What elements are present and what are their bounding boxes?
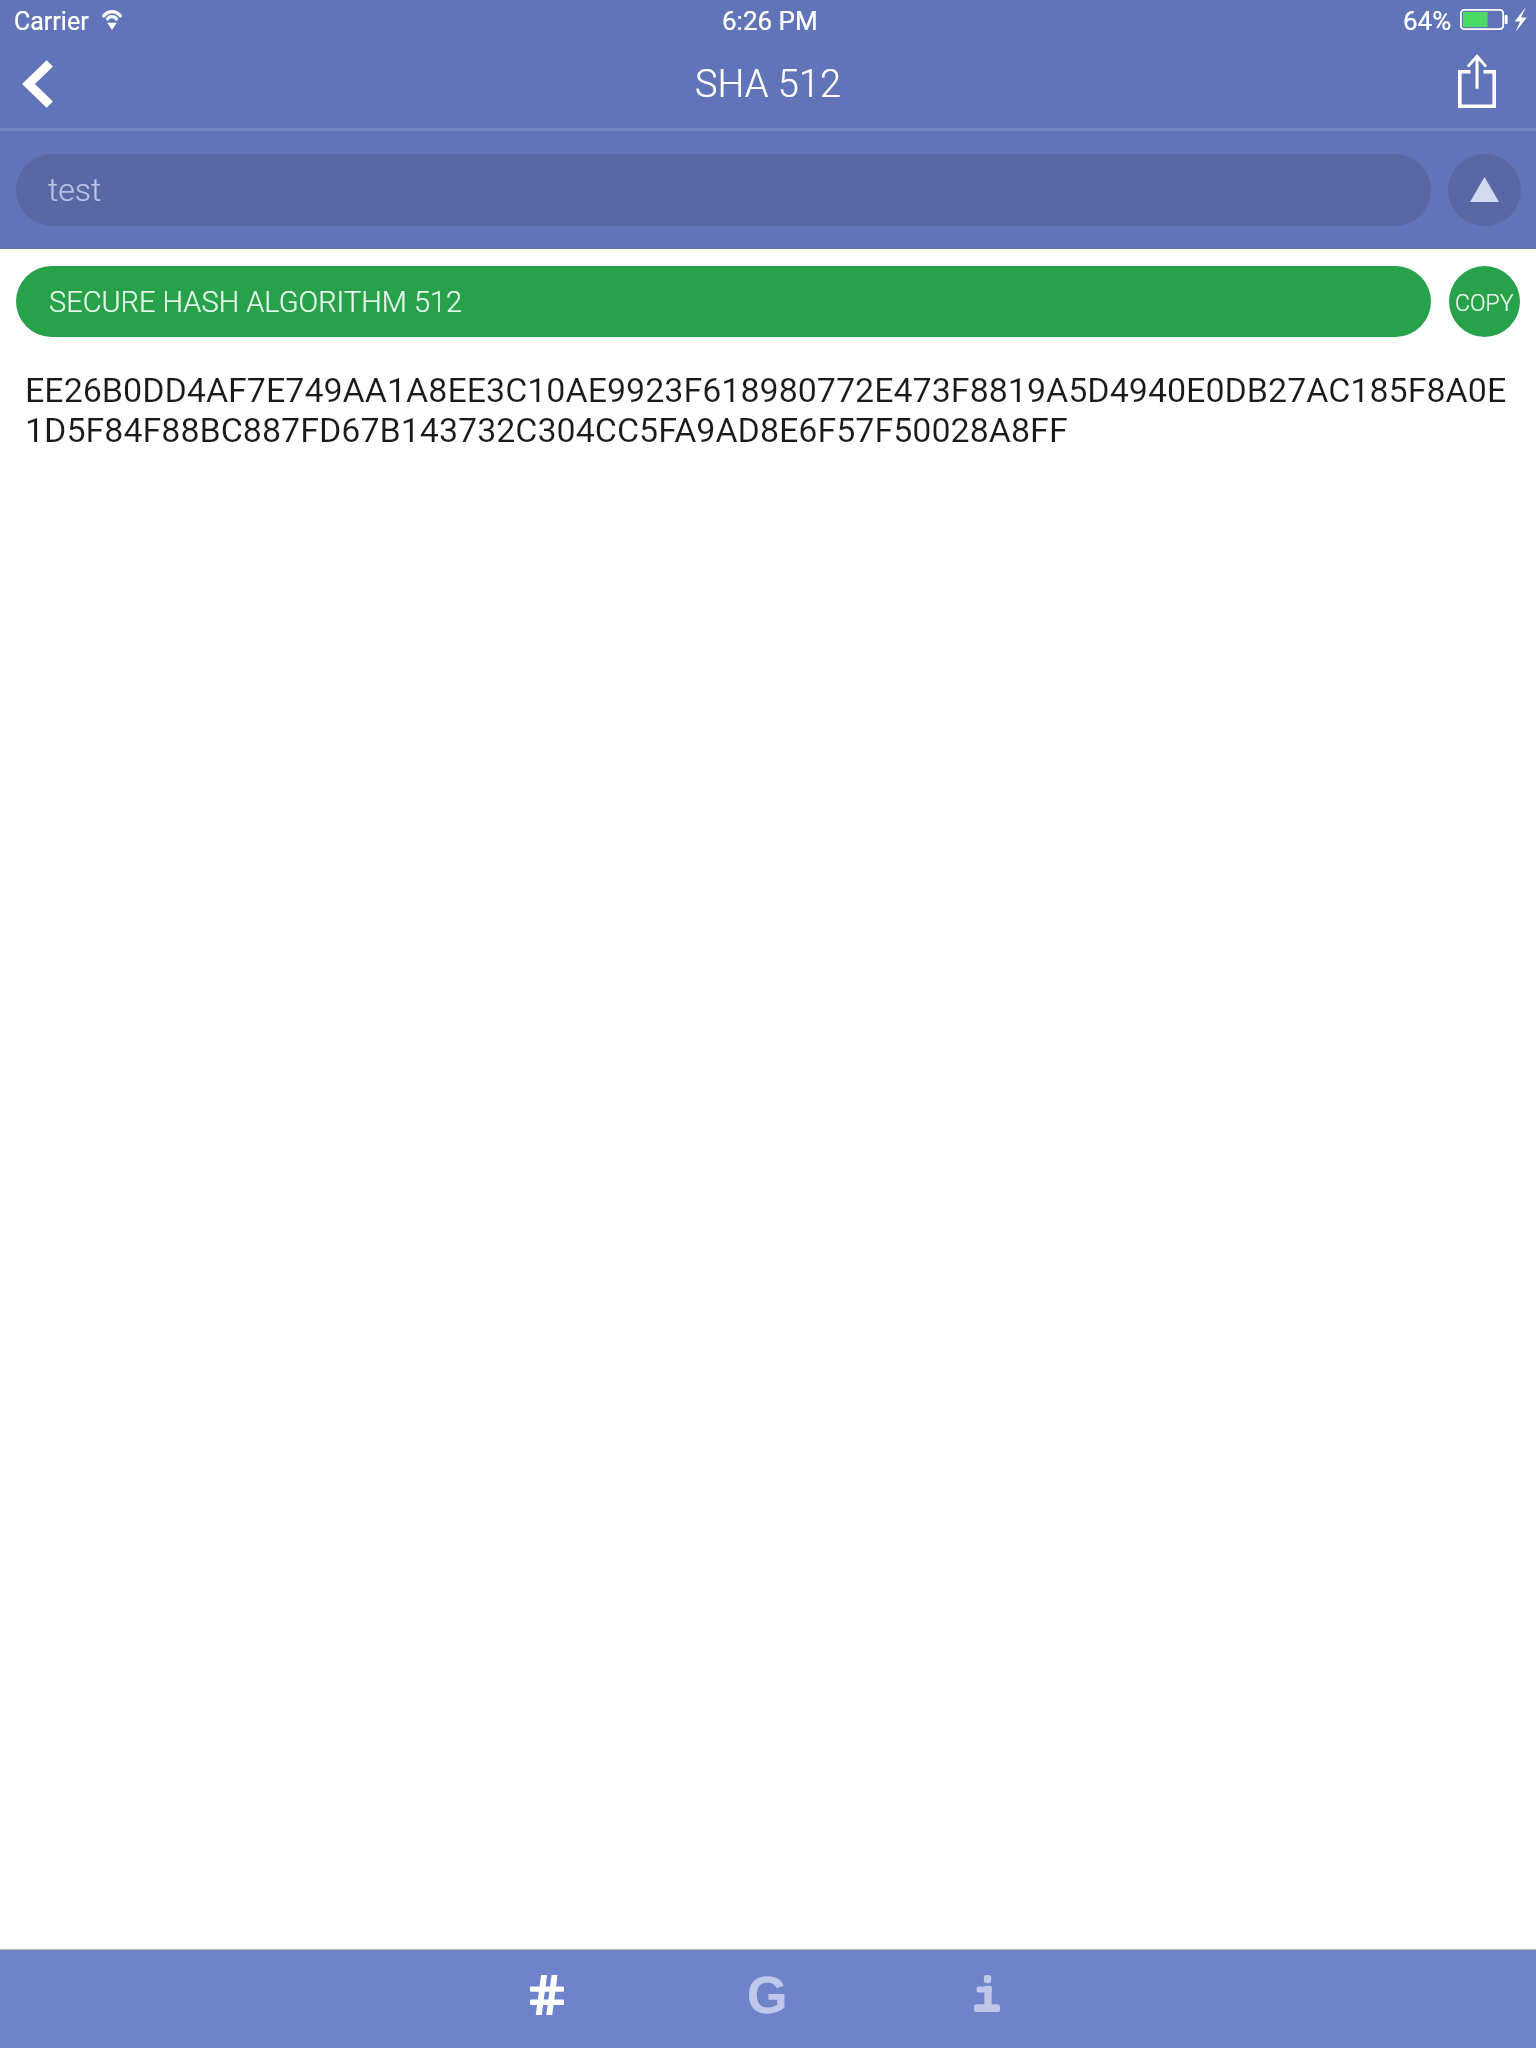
staticText: 64% [1403,6,1452,36]
button[interactable]: Info [877,1949,1097,2048]
button[interactable]: COPY [1449,266,1520,337]
staticText: test [48,171,102,209]
staticText: EE26B0DD4AF7E749AA1A8EE3C10AE9923F618980… [25,370,1518,450]
button[interactable]: Share [1448,40,1536,128]
staticText: 6:26 PM [722,6,818,36]
staticText: COPY [1455,290,1514,317]
staticText: Carrier [14,7,89,36]
button[interactable]: Generator [657,1949,877,2048]
button[interactable]: Hash [437,1949,657,2048]
staticText: SHA 512 [695,62,841,107]
staticText: SECURE HASH ALGORITHM 512 [49,285,463,319]
button[interactable]: Back [0,40,88,128]
button[interactable]: SECURE HASH ALGORITHM 512 [16,266,1431,337]
staticText: G [747,1966,788,2024]
button[interactable]: test [16,154,1431,226]
button[interactable]: Submit [1448,154,1521,226]
